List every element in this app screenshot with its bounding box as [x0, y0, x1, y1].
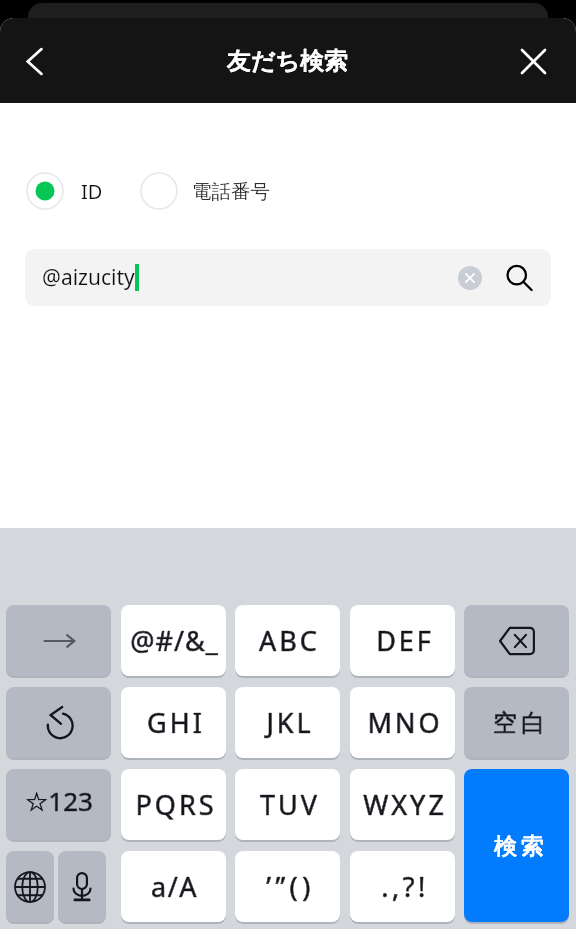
- button[interactable]: 空白: [464, 687, 569, 758]
- staticText: GHI: [147, 704, 205, 741]
- staticText: @#/&_: [130, 622, 219, 659]
- staticText: @aizucity: [42, 263, 135, 292]
- staticText: JKL: [266, 704, 314, 741]
- staticText: GHI: [147, 704, 205, 741]
- staticText: WXYZ: [363, 786, 447, 823]
- staticText: @#/&_: [130, 622, 219, 659]
- button[interactable]: Change keyboard language: [6, 851, 54, 922]
- staticText: ☆123: [25, 783, 93, 818]
- button[interactable]: Voice input: [58, 851, 106, 922]
- staticText: DEF: [376, 622, 434, 659]
- button[interactable]: @#/&_: [121, 605, 226, 676]
- button[interactable]: DEF: [350, 605, 455, 676]
- button[interactable]: ID: [26, 172, 103, 210]
- button[interactable]: ABC: [235, 605, 340, 676]
- staticText: 検索: [492, 832, 546, 861]
- staticText: ABC: [259, 622, 320, 659]
- staticText: TUV: [260, 786, 320, 823]
- staticText: ABC: [259, 622, 320, 659]
- staticText: PQRS: [135, 786, 217, 823]
- staticText: .,?!: [381, 868, 429, 905]
- staticText: 検索: [492, 832, 546, 861]
- button[interactable]: ☆123: [6, 769, 111, 840]
- staticText: ’”(): [266, 868, 315, 905]
- button[interactable]: WXYZ: [350, 769, 455, 840]
- staticText: TUV: [260, 786, 320, 823]
- staticText: MNO: [367, 704, 443, 741]
- button[interactable]: ’”(): [235, 851, 340, 922]
- button[interactable]: JKL: [235, 687, 340, 758]
- button[interactable]: Backspace: [464, 605, 569, 676]
- staticText: ID: [81, 178, 103, 205]
- button[interactable]: Search: [497, 256, 541, 300]
- staticText: ’”(): [266, 868, 315, 905]
- staticText: a/A: [151, 868, 198, 905]
- staticText: DEF: [376, 622, 434, 659]
- button[interactable]: @aizucity: [25, 249, 551, 306]
- staticText: 空白: [491, 708, 547, 738]
- button[interactable]: 検索: [464, 769, 569, 922]
- button[interactable]: TUV: [235, 769, 340, 840]
- button[interactable]: PQRS: [121, 769, 226, 840]
- button[interactable]: Undo: [6, 687, 111, 758]
- staticText: a/A: [151, 868, 198, 905]
- staticText: 空白: [491, 708, 547, 738]
- staticText: 電話番号: [192, 179, 270, 204]
- button[interactable]: 電話番号: [140, 172, 270, 210]
- staticText: 友だち検索: [227, 46, 349, 76]
- button[interactable]: Next character: [6, 605, 111, 676]
- staticText: PQRS: [135, 786, 217, 823]
- button[interactable]: Close: [509, 37, 557, 85]
- button[interactable]: a/A: [121, 851, 226, 922]
- button[interactable]: Back: [10, 37, 58, 85]
- staticText: JKL: [266, 704, 314, 741]
- staticText: WXYZ: [363, 786, 447, 823]
- staticText: MNO: [367, 704, 443, 741]
- button[interactable]: .,?!: [350, 851, 455, 922]
- button[interactable]: MNO: [350, 687, 455, 758]
- staticText: 友だち検索: [227, 46, 349, 76]
- button[interactable]: Clear text: [452, 260, 488, 296]
- button[interactable]: GHI: [121, 687, 226, 758]
- staticText: ☆123: [25, 783, 93, 818]
- staticText: .,?!: [381, 868, 429, 905]
